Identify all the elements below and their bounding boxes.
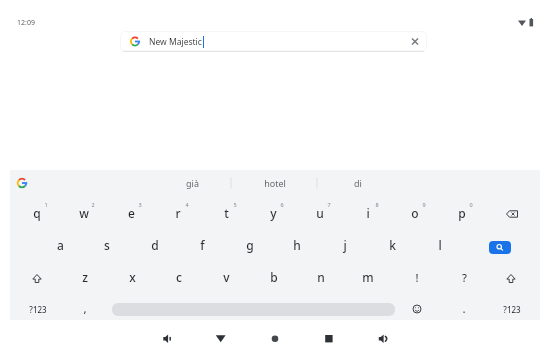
button[interactable]: v <box>212 262 240 292</box>
staticText: z <box>82 269 88 285</box>
staticText: ?123 <box>503 304 521 315</box>
staticText: i <box>366 205 370 221</box>
staticText: 2 <box>91 201 95 208</box>
button[interactable]: u <box>306 198 334 228</box>
staticText: 9 <box>422 201 426 208</box>
button[interactable]: hotel <box>234 173 316 193</box>
button[interactable]: p <box>448 198 476 228</box>
staticText: p <box>458 205 466 221</box>
staticText: j <box>343 237 347 253</box>
staticText: . <box>462 301 466 317</box>
staticText: New Majestic <box>149 36 202 48</box>
button[interactable]: z <box>71 262 99 292</box>
button[interactable]: h <box>283 230 311 260</box>
button[interactable] <box>403 296 431 322</box>
staticText: b <box>270 269 278 285</box>
staticText: ?123 <box>29 304 47 315</box>
button[interactable] <box>262 326 288 348</box>
button[interactable]: x <box>118 262 146 292</box>
staticText: r <box>175 205 181 221</box>
staticText: 8 <box>375 201 379 208</box>
button[interactable] <box>404 31 427 52</box>
staticText: t <box>224 205 229 221</box>
staticText: h <box>293 237 301 253</box>
button[interactable]: ! <box>403 262 431 292</box>
staticText: d <box>151 237 159 253</box>
staticText: c <box>176 269 182 285</box>
button[interactable]: l <box>426 230 454 260</box>
staticText: hotel <box>264 177 286 189</box>
staticText: f <box>200 237 205 253</box>
staticText: o <box>411 205 419 221</box>
button[interactable]: già <box>149 173 235 193</box>
button[interactable] <box>209 326 235 348</box>
staticText: e <box>128 205 135 221</box>
button[interactable]: q <box>23 198 51 228</box>
button[interactable]: ? <box>450 262 478 292</box>
button[interactable]: j <box>331 230 359 260</box>
staticText: q <box>33 205 41 221</box>
staticText: w <box>79 205 89 221</box>
button[interactable] <box>154 326 180 348</box>
button[interactable]: y <box>259 198 287 228</box>
button[interactable]: a <box>46 230 74 260</box>
staticText: 4 <box>185 201 189 208</box>
staticText: , <box>83 301 87 317</box>
staticText: u <box>316 205 324 221</box>
button[interactable]: di <box>317 173 399 193</box>
button[interactable]: . <box>450 294 478 324</box>
button[interactable]: r <box>164 198 192 228</box>
button[interactable] <box>12 173 32 193</box>
button[interactable]: , <box>71 294 99 324</box>
staticText: y <box>270 205 277 221</box>
staticText: ? <box>462 270 467 285</box>
staticText: ! <box>415 270 419 285</box>
staticText: 12:09 <box>17 18 35 28</box>
staticText: 5 <box>233 201 237 208</box>
button[interactable] <box>370 326 396 348</box>
button[interactable]: ?123 <box>496 294 528 324</box>
staticText: k <box>389 237 396 253</box>
staticText: s <box>104 237 110 253</box>
button[interactable]: f <box>188 230 216 260</box>
staticText: 0 <box>469 201 473 208</box>
staticText: già <box>186 177 199 189</box>
staticText: l <box>438 237 442 253</box>
button[interactable]: b <box>260 262 288 292</box>
button[interactable]: n <box>307 262 335 292</box>
button[interactable]: w <box>70 198 98 228</box>
button[interactable] <box>489 241 511 254</box>
button[interactable]: s <box>93 230 121 260</box>
button[interactable]: i <box>354 198 382 228</box>
button[interactable] <box>23 264 51 290</box>
button[interactable]: m <box>354 262 382 292</box>
staticText: 3 <box>138 201 142 208</box>
button[interactable] <box>316 326 342 348</box>
button[interactable]: o <box>401 198 429 228</box>
staticText: di <box>354 177 362 189</box>
button[interactable]: New Majestic <box>120 31 427 52</box>
button[interactable]: e <box>117 198 145 228</box>
button[interactable]: d <box>141 230 169 260</box>
button[interactable]: c <box>165 262 193 292</box>
button[interactable]: ?123 <box>22 294 54 324</box>
staticText: 1 <box>44 201 48 208</box>
button[interactable]: k <box>378 230 406 260</box>
staticText: 6 <box>280 201 284 208</box>
button[interactable] <box>497 264 525 290</box>
staticText: m <box>362 269 374 285</box>
staticText: x <box>129 269 136 285</box>
button[interactable]: g <box>236 230 264 260</box>
staticText: a <box>57 237 64 253</box>
button[interactable] <box>498 200 526 226</box>
staticText: n <box>317 269 325 285</box>
button[interactable]: t <box>212 198 240 228</box>
staticText: g <box>246 237 254 253</box>
staticText: 7 <box>327 201 331 208</box>
staticText: v <box>223 269 230 285</box>
